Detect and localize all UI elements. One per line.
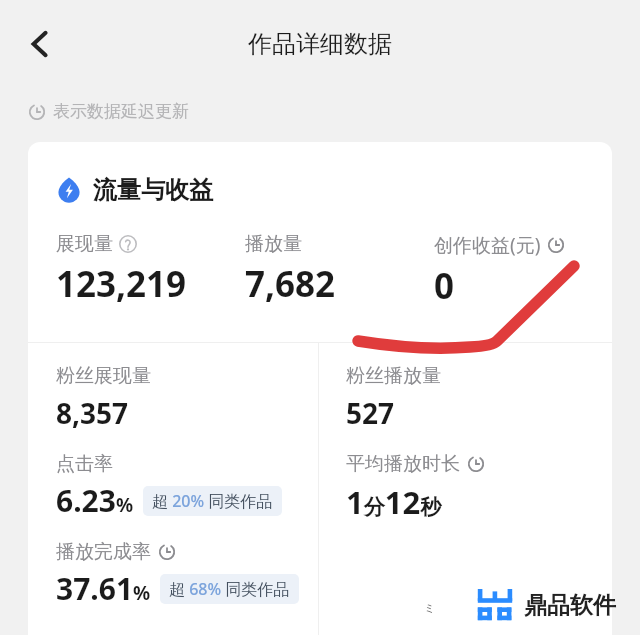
staticText: 7,682 bbox=[245, 260, 336, 308]
staticText: 创作收益(元) bbox=[434, 232, 541, 258]
staticText: ミ bbox=[424, 601, 436, 615]
staticText: 超 68% 同类作品 bbox=[169, 578, 290, 600]
button[interactable]: 点击率 bbox=[56, 452, 282, 521]
staticText: 表示数据延迟更新 bbox=[53, 101, 189, 122]
staticText: 0 bbox=[434, 262, 455, 310]
staticText: 1分12秒 bbox=[346, 481, 442, 523]
staticText: 粉丝展现量 bbox=[56, 364, 151, 388]
staticText: 6.23% bbox=[56, 480, 134, 521]
staticText: 527 bbox=[346, 394, 395, 432]
staticText: 点击率 bbox=[56, 452, 113, 476]
staticText: 粉丝播放量 bbox=[346, 364, 441, 388]
staticText: 123,219 bbox=[56, 260, 187, 308]
staticText: 超 20% 同类作品 bbox=[152, 490, 273, 512]
button[interactable]: 超 20% 同类作品 bbox=[143, 486, 282, 516]
button[interactable]: 创作收益(元) bbox=[434, 232, 565, 310]
button[interactable]: 粉丝展现量 bbox=[56, 364, 151, 432]
button[interactable]: 流量与收益 bbox=[56, 175, 213, 205]
button[interactable]: 平均播放时长 bbox=[346, 452, 485, 523]
button[interactable]: 粉丝播放量 bbox=[346, 364, 441, 432]
button[interactable]: 超 68% 同类作品 bbox=[160, 574, 299, 604]
button[interactable]: 播放量 bbox=[245, 232, 336, 308]
staticText: 鼎品软件 bbox=[524, 591, 616, 620]
button[interactable]: Back bbox=[12, 16, 68, 72]
staticText: 展现量 bbox=[56, 232, 113, 256]
staticText: 播放完成率 bbox=[56, 540, 151, 564]
staticText: 播放量 bbox=[245, 232, 302, 256]
staticText: 37.61% bbox=[56, 568, 151, 609]
button[interactable]: 播放完成率 bbox=[56, 540, 299, 609]
staticText: 8,357 bbox=[56, 394, 129, 432]
button[interactable]: 展现量 bbox=[56, 232, 187, 308]
staticText: 平均播放时长 bbox=[346, 452, 460, 476]
staticText: 流量与收益 bbox=[93, 175, 213, 205]
staticText: 作品详细数据 bbox=[248, 29, 392, 59]
